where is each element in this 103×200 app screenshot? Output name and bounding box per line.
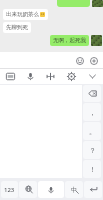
button[interactable]: Collapse bbox=[82, 69, 103, 84]
button[interactable]: Backspace bbox=[83, 85, 101, 102]
button[interactable]: 出来玩奶茶么 bbox=[3, 9, 48, 20]
staticText: ？ bbox=[89, 146, 96, 155]
button[interactable]: ！ bbox=[83, 160, 101, 178]
staticText: ！ bbox=[89, 165, 96, 174]
staticText: ， bbox=[89, 108, 96, 117]
button[interactable]: Settings bbox=[61, 69, 82, 84]
staticText: 123 bbox=[4, 186, 15, 194]
button[interactable] bbox=[84, 181, 102, 198]
button[interactable]: Voice input bbox=[20, 69, 40, 84]
button[interactable]: ？ bbox=[83, 141, 101, 159]
button[interactable]: More bbox=[88, 55, 99, 66]
staticText: 。 bbox=[89, 127, 96, 136]
button[interactable]: 。 bbox=[83, 122, 101, 140]
staticText: 出来玩奶茶么 bbox=[6, 11, 39, 18]
button[interactable]: 123 bbox=[1, 181, 18, 198]
button[interactable]: Keyboard bbox=[0, 69, 20, 84]
button[interactable]: 无啊，起死我 bbox=[50, 35, 89, 46]
staticText: 中 bbox=[71, 186, 78, 194]
staticText: 无啊，起死我 bbox=[53, 37, 86, 44]
button[interactable]: Avatar bbox=[91, 35, 102, 46]
button[interactable]: Avatar bbox=[92, 0, 103, 7]
button[interactable] bbox=[57, 0, 90, 7]
button[interactable]: Handwriting bbox=[40, 69, 61, 84]
button[interactable]: 中 bbox=[65, 181, 83, 198]
button[interactable]: Emoji bbox=[74, 55, 85, 66]
button[interactable]: Space / voice bbox=[38, 181, 64, 198]
button[interactable] bbox=[19, 181, 37, 198]
staticText: 先聊到死 bbox=[6, 24, 28, 31]
button[interactable]: 先聊到死 bbox=[3, 22, 31, 33]
button[interactable]: ， bbox=[83, 103, 101, 121]
